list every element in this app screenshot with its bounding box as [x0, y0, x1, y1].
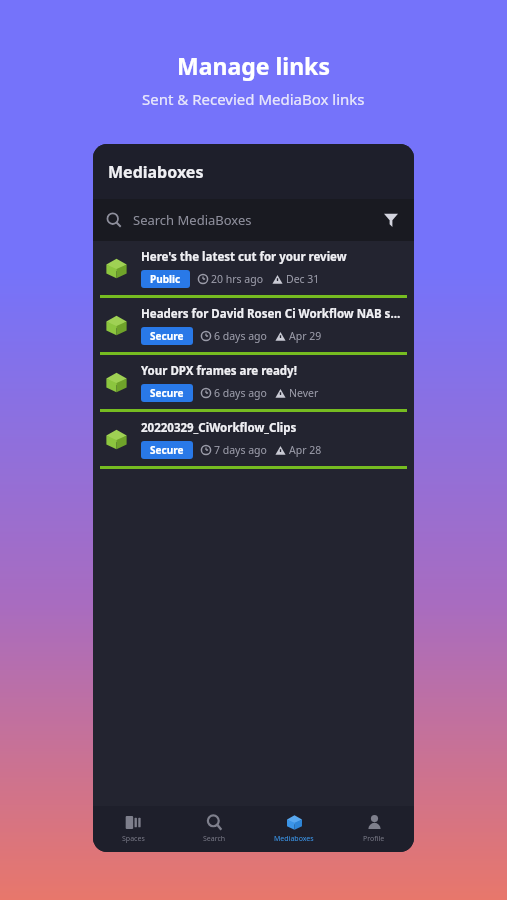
staticText: Here's the latest cut for your review	[141, 249, 347, 265]
staticText: Secure	[150, 386, 184, 400]
staticText: Mediaboxes	[108, 161, 204, 183]
staticText: Spaces	[122, 834, 145, 844]
staticText: 20 hrs ago	[211, 272, 264, 286]
staticText: Secure	[150, 329, 184, 343]
button[interactable]: Headers for David Rosen Ci Workflow NAB …	[93, 298, 414, 355]
button[interactable]: 20220329_CiWorkflow_Clips	[93, 412, 414, 469]
staticText: Headers for David Rosen Ci Workflow NAB …	[141, 306, 402, 322]
staticText: Sent & Recevied MediaBox links	[142, 89, 365, 109]
button[interactable]: Search MediaBoxes	[93, 199, 414, 241]
staticText: Your DPX frames are ready!	[141, 363, 297, 379]
staticText: Dec 31	[286, 272, 320, 286]
button[interactable]: Your DPX frames are ready!	[93, 355, 414, 412]
staticText: Manage links	[177, 50, 330, 81]
staticText: 6 days ago	[214, 329, 267, 343]
button[interactable]: Search	[174, 806, 254, 852]
staticText: 20220329_CiWorkflow_Clips	[141, 420, 297, 436]
staticText: 6 days ago	[214, 386, 267, 400]
staticText: Public	[150, 272, 181, 286]
button[interactable]: Profile	[334, 806, 414, 852]
staticText: Search	[203, 834, 226, 844]
button[interactable]: Mediaboxes	[254, 806, 334, 852]
button[interactable]: Spaces	[93, 806, 174, 852]
staticText: Secure	[150, 443, 184, 457]
staticText: 7 days ago	[214, 443, 267, 457]
staticText: Apr 28	[289, 443, 322, 457]
staticText: Search MediaBoxes	[133, 211, 252, 229]
button[interactable]: Here's the latest cut for your review	[93, 241, 414, 298]
staticText: Profile	[363, 834, 385, 844]
staticText: Never	[289, 386, 319, 400]
staticText: Apr 29	[289, 329, 322, 343]
button[interactable]: Filter	[381, 210, 401, 230]
staticText: Mediaboxes	[274, 834, 314, 844]
